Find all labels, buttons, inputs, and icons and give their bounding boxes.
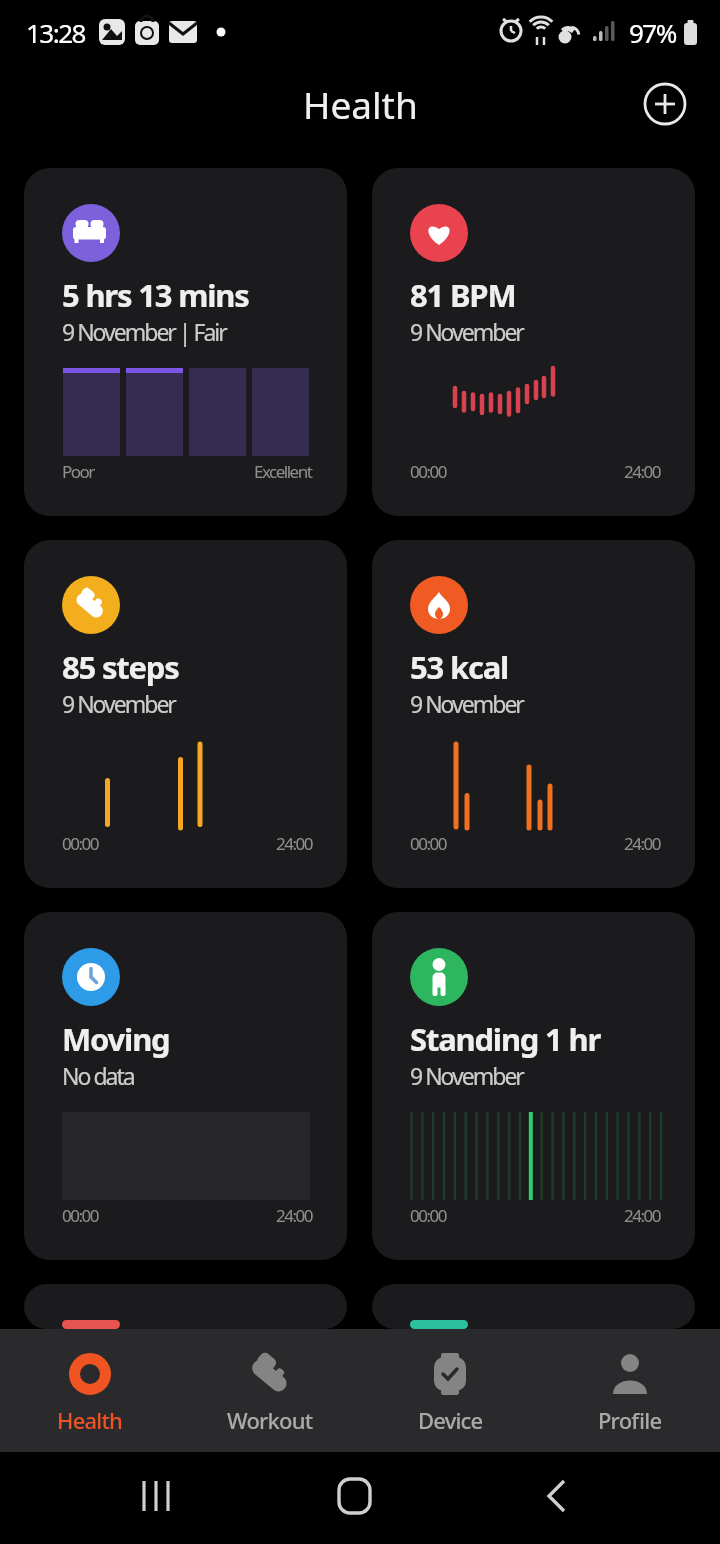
staticText: Profile <box>598 1405 662 1435</box>
button[interactable]: Device <box>360 1329 540 1452</box>
staticText: 24:00 <box>276 832 312 855</box>
button[interactable]: 81 BPM <box>372 168 695 516</box>
button[interactable]: Standing 1 hr <box>372 912 695 1260</box>
button[interactable]: Profile <box>540 1329 720 1452</box>
staticText: 53 kcal <box>410 646 509 688</box>
button[interactable]: 53 kcal <box>372 540 695 888</box>
staticText: 00:00 <box>62 1204 98 1227</box>
staticText: 24:00 <box>624 460 660 483</box>
staticText: Poor <box>62 460 94 483</box>
staticText: Health <box>303 79 418 129</box>
staticText: 00:00 <box>410 460 446 483</box>
staticText: Health <box>57 1405 123 1435</box>
staticText: 9 November <box>410 688 523 719</box>
staticText: 00:00 <box>410 1204 446 1227</box>
button[interactable]: 85 steps <box>24 540 347 888</box>
staticText: 13:28 <box>26 15 85 50</box>
staticText: Moving <box>62 1018 170 1060</box>
staticText: 81 BPM <box>410 274 516 316</box>
staticText: 24:00 <box>276 1204 312 1227</box>
staticText: 9 November <box>410 1060 523 1091</box>
staticText: 00:00 <box>410 832 446 855</box>
staticText: Workout <box>227 1405 313 1435</box>
staticText: 9 November <box>410 316 523 347</box>
staticText: Device <box>418 1405 483 1435</box>
button[interactable]: Workout <box>180 1329 360 1452</box>
staticText: 24:00 <box>624 832 660 855</box>
button[interactable]: Health <box>0 1329 180 1452</box>
staticText: 85 steps <box>62 646 179 688</box>
staticText: 9 November <box>62 688 175 719</box>
button[interactable] <box>643 82 687 126</box>
button[interactable]: Moving <box>24 912 347 1260</box>
button[interactable]: 5 hrs 13 mins <box>24 168 347 516</box>
staticText: Excellent <box>254 460 312 483</box>
staticText: 24:00 <box>624 1204 660 1227</box>
staticText: 00:00 <box>62 832 98 855</box>
staticText: 97% <box>629 15 676 50</box>
staticText: Standing 1 hr <box>410 1018 601 1060</box>
staticText: 9 November | Fair <box>62 316 226 347</box>
staticText: 5 hrs 13 mins <box>62 274 249 316</box>
staticText: No data <box>62 1060 134 1091</box>
